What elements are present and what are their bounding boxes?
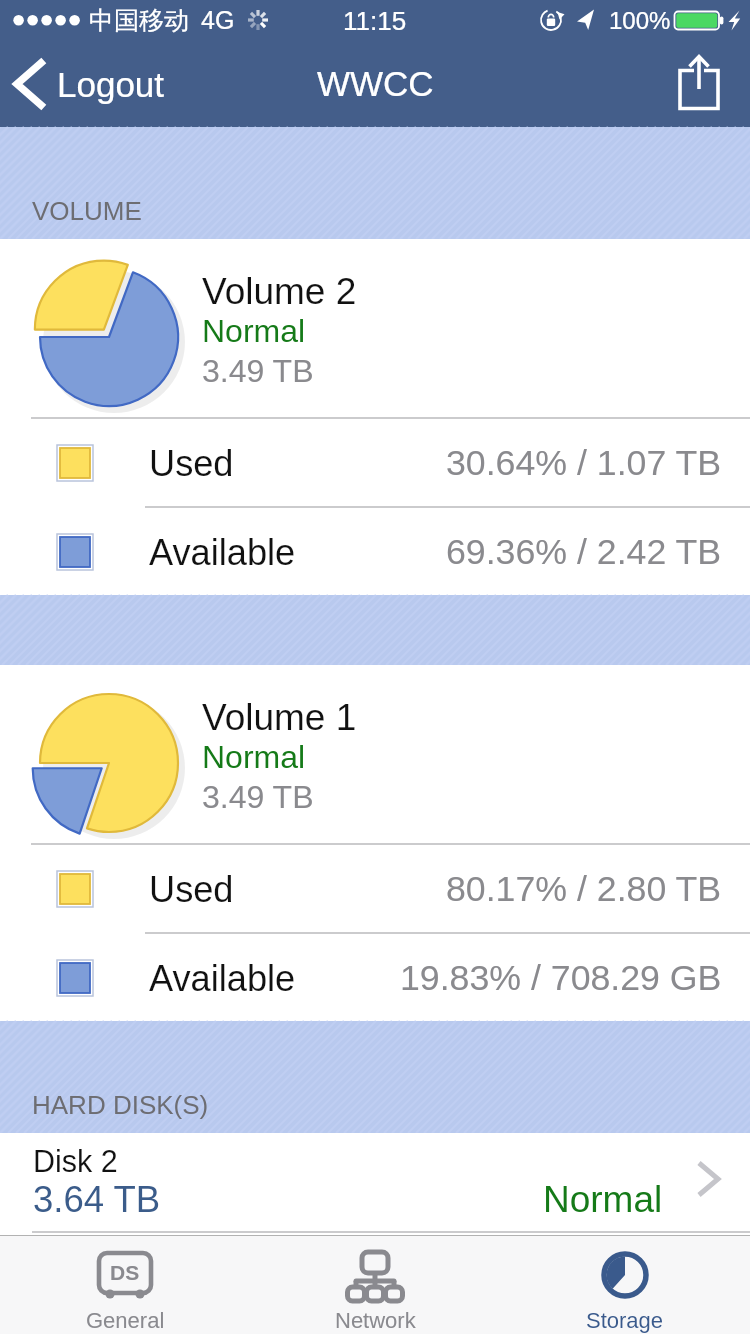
button[interactable]: Network [250, 1235, 500, 1334]
button[interactable]: Used [0, 419, 750, 506]
staticText: 11:15 [343, 6, 407, 35]
button[interactable]: Volume 2 [0, 239, 750, 417]
staticText: 19.83% / 708.29 GB [400, 958, 722, 998]
staticText: General [86, 1308, 165, 1333]
staticText: Used [149, 443, 234, 483]
staticText: Available [149, 958, 296, 998]
button[interactable]: Share [672, 56, 728, 112]
staticText: 4G [201, 6, 235, 34]
button[interactable]: Available [0, 934, 750, 1021]
staticText: 30.64% / 1.07 TB [446, 443, 722, 483]
button[interactable]: Used [0, 845, 750, 932]
button[interactable]: Logout [0, 54, 165, 114]
staticText: DS [110, 1261, 140, 1284]
staticText: Normal [202, 739, 306, 775]
staticText: Storage [586, 1308, 664, 1333]
staticText: HARD DISK(S) [32, 1090, 209, 1119]
staticText: Volume 2 [202, 271, 357, 312]
staticText: WWCC [317, 64, 434, 103]
button[interactable]: Volume 1 [0, 665, 750, 843]
staticText: VOLUME [32, 196, 142, 225]
staticText: 3.49 TB [202, 779, 314, 815]
staticText: 3.64 TB [33, 1179, 161, 1220]
staticText: Network [335, 1308, 416, 1333]
staticText: 中国移动 [89, 5, 189, 36]
staticText: 100% [609, 7, 671, 34]
staticText: Disk 2 [33, 1144, 118, 1178]
staticText: 69.36% / 2.42 TB [446, 532, 722, 572]
button[interactable]: Disk 2 [0, 1133, 750, 1231]
staticText: Used [149, 869, 234, 909]
staticText: Normal [202, 313, 306, 349]
staticText: 3.49 TB [202, 353, 314, 389]
button[interactable]: Available [0, 508, 750, 595]
staticText: 80.17% / 2.80 TB [446, 869, 722, 909]
button[interactable]: DS [0, 1235, 250, 1334]
staticText: Logout [57, 65, 165, 104]
button[interactable]: Storage [500, 1235, 750, 1334]
staticText: Available [149, 532, 296, 572]
staticText: Normal [543, 1179, 663, 1220]
staticText: Volume 1 [202, 697, 357, 738]
